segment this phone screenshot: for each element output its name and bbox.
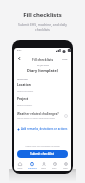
button[interactable]: Back [17,56,22,61]
button[interactable]: Tasks [38,162,49,170]
staticText: 05 Jun 2024 [37,64,49,67]
staticText: Checklists [28,167,37,170]
staticText: Docs [52,167,57,170]
button[interactable]: Checklists [26,162,38,170]
button[interactable]: Project [17,97,68,111]
staticText: Submit EHS, machine, and daily checklist… [18,22,67,32]
staticText: Weather related challenges? [17,112,59,116]
staticText: Add remarks, deviations or actions [21,127,68,131]
staticText: Project [17,97,29,101]
staticText: Home [17,167,23,170]
staticText: Select project [17,103,33,106]
staticText: Submit checklist [30,152,55,156]
button[interactable]: Add remarks, deviations or actions [17,127,68,131]
staticText: Make sure you complete all fields [14,145,71,148]
button[interactable]: Home [14,162,26,170]
staticText: Fill checklists [23,11,62,19]
staticText: List of tasks or other attending notes [17,117,55,120]
staticText: Diary (template) [27,68,58,73]
staticText: Fill checklists [32,57,54,61]
button[interactable]: Weather related challenges? [17,112,68,120]
staticText: Select location [17,89,34,92]
staticText: Location [17,83,31,87]
staticText: 9:41 [17,49,22,52]
staticText: Save [62,57,68,60]
button[interactable]: Submit checklist [17,150,68,158]
button[interactable]: Location [17,83,68,97]
button[interactable]: Docs [49,162,60,170]
button[interactable]: Save [62,57,68,60]
staticText: More [63,167,68,170]
button[interactable]: More [60,162,71,170]
staticText: Tasks [41,167,46,170]
staticText: Identifier [17,77,28,80]
